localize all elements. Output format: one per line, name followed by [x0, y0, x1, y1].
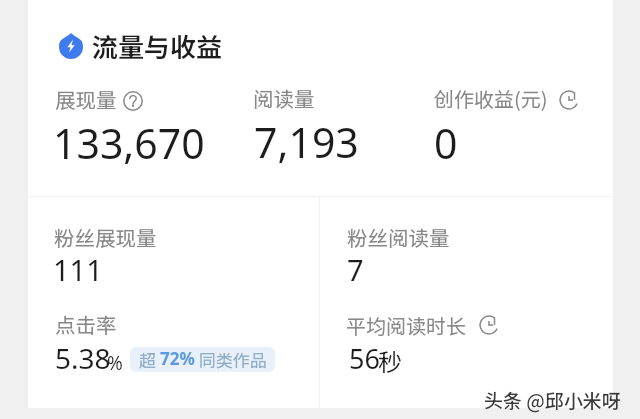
button[interactable]: Traffic and revenue [57, 29, 225, 63]
staticText: 超 [139, 347, 160, 372]
staticText: 创作收益(元) [434, 84, 548, 113]
staticText: 133,670 [53, 115, 205, 171]
staticText: 7 [347, 250, 364, 289]
staticText: 5.38 [55, 339, 111, 377]
staticText: 平均阅读时长 [346, 311, 466, 340]
button[interactable]: History [479, 315, 499, 335]
staticText: 56 [349, 340, 380, 377]
staticText: 粉丝展现量 [54, 222, 157, 252]
other: Traffic and revenue [59, 33, 83, 59]
staticText: 72% [160, 347, 195, 370]
button[interactable]: Help [123, 91, 143, 111]
staticText: 7,193 [254, 114, 359, 170]
staticText: 111 [53, 250, 103, 289]
staticText: 秒 [378, 343, 402, 378]
staticText: 点击率 [55, 309, 117, 339]
staticText: 头条 @邱小米呀 [484, 386, 621, 414]
staticText: 流量与收益 [92, 27, 223, 65]
button[interactable]: Refresh [559, 90, 579, 110]
staticText: 阅读量 [253, 83, 315, 113]
staticText: 粉丝阅读量 [347, 222, 450, 252]
staticText: % [107, 350, 123, 376]
staticText: 展现量 [55, 84, 117, 114]
staticText: 0 [434, 115, 458, 171]
staticText: 同类作品 [195, 347, 267, 372]
button[interactable]: 超 [130, 347, 275, 372]
